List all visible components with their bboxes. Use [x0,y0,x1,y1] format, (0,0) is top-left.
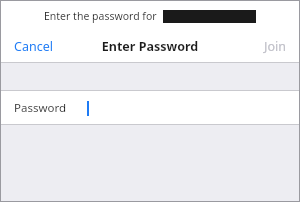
button[interactable]: Password [1,91,299,124]
staticText: Enter Password [1,38,299,55]
button[interactable]: Join [251,33,299,60]
staticText: Enter the password for [44,9,157,23]
staticText: Password [14,100,67,116]
staticText: Cancel [14,38,53,55]
button[interactable]: Cancel [1,33,66,60]
staticText: Join [264,38,286,55]
